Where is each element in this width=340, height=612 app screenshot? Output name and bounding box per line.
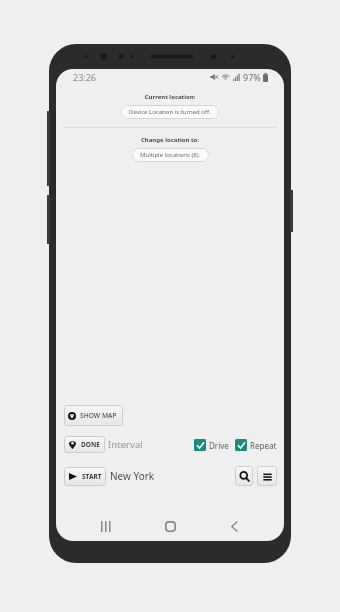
button[interactable]: Multiple locations (8). xyxy=(132,148,209,162)
staticText: DONE xyxy=(81,440,100,449)
staticText: SHOW MAP xyxy=(80,411,117,420)
button[interactable]: Recents xyxy=(74,511,138,541)
button[interactable]: START xyxy=(64,467,106,486)
button[interactable]: Device Location is turned off. xyxy=(121,105,219,119)
staticText: Device Location is turned off. xyxy=(129,108,211,116)
staticText: 23:26 xyxy=(73,71,97,83)
button[interactable]: SHOW MAP xyxy=(64,405,123,426)
staticText: Interval xyxy=(108,438,143,451)
staticText: Current location: xyxy=(56,93,284,101)
staticText: Repeat xyxy=(250,440,277,451)
staticText: 97% xyxy=(243,71,261,83)
button[interactable]: Repeat xyxy=(235,439,277,451)
staticText: START xyxy=(82,472,102,481)
button[interactable]: Menu xyxy=(257,466,277,486)
button[interactable]: DONE xyxy=(64,436,105,453)
button[interactable]: Drive xyxy=(194,439,229,451)
button[interactable]: Back xyxy=(202,511,266,541)
staticText: Change location to: xyxy=(56,136,284,144)
staticText: Multiple locations (8). xyxy=(140,151,201,159)
button[interactable]: Home xyxy=(138,511,202,541)
button[interactable]: Search xyxy=(235,466,253,486)
staticText: Drive xyxy=(209,440,229,451)
staticText: New York xyxy=(110,469,155,483)
